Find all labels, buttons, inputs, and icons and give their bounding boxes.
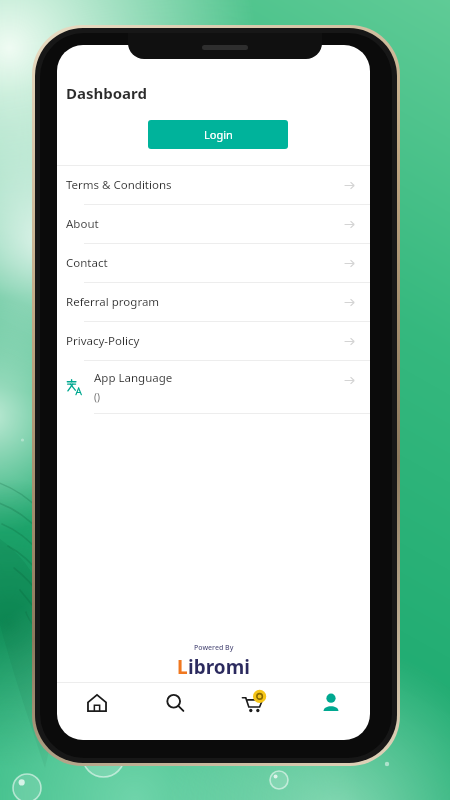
button[interactable]: Privacy-Policy: [57, 322, 370, 360]
staticText: About: [66, 216, 343, 232]
button[interactable]: Referral program: [57, 283, 370, 321]
button[interactable]: Cart: [214, 683, 292, 740]
button[interactable]: Home: [57, 683, 136, 740]
button[interactable]: Terms & Conditions: [57, 166, 370, 204]
staticText: Powered By: [194, 643, 234, 653]
staticText: L: [177, 654, 188, 680]
button[interactable]: Login: [148, 120, 288, 149]
staticText: Terms & Conditions: [66, 177, 343, 193]
button[interactable]: Search: [136, 683, 214, 740]
staticText: App Language: [94, 370, 173, 386]
button[interactable]: About: [57, 205, 370, 243]
staticText: Privacy-Policy: [66, 333, 343, 349]
staticText: Referral program: [66, 294, 343, 310]
staticText: Contact: [66, 255, 343, 271]
button[interactable]: Profile: [292, 683, 370, 740]
staticText: Dashboard: [66, 83, 147, 103]
staticText: Login: [204, 127, 233, 142]
staticText: ibromi: [188, 654, 250, 680]
button[interactable]: App Language: [57, 361, 370, 413]
button[interactable]: Contact: [57, 244, 370, 282]
staticText: (): [94, 390, 100, 404]
